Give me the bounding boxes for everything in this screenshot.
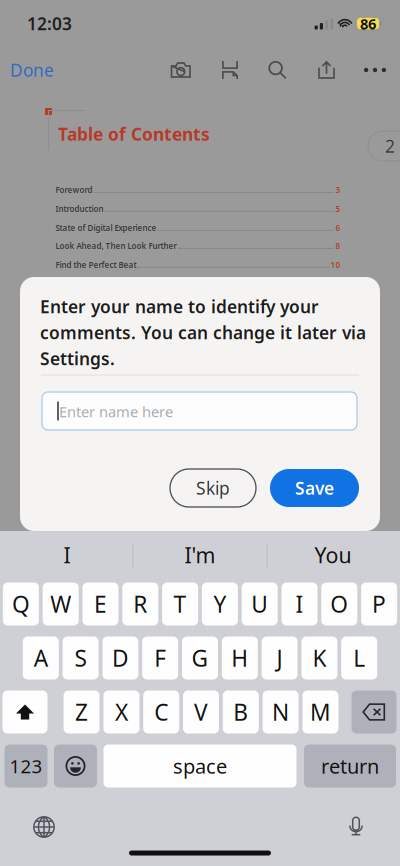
staticText: Look Ahead, Then Look Further [55,241,176,251]
button[interactable]: I'm [133,532,266,578]
button[interactable]: Camera [170,60,191,79]
button[interactable]: N [263,690,299,733]
button[interactable]: Delete [351,690,396,733]
button[interactable]: Dictation [347,815,364,836]
staticText: ........................................… [177,241,334,251]
staticText: J [277,643,283,673]
button[interactable]: I [0,532,133,578]
button[interactable]: T [162,582,198,625]
button[interactable]: F [142,636,178,679]
button[interactable]: Next keyboard [33,816,55,838]
button[interactable]: R [122,582,158,625]
staticText: N [272,697,289,727]
button[interactable]: L [341,636,377,679]
button[interactable]: I [281,582,317,625]
staticText: X [115,697,128,727]
staticText: State of Digital Experience [55,223,156,233]
staticText: 6 [335,223,340,233]
button[interactable]: D [102,636,138,679]
button[interactable]: Search [268,60,287,79]
staticText: Foreword [55,185,92,195]
staticText: A [34,643,48,673]
staticText: F [154,643,166,673]
staticText: U [251,589,268,619]
staticText: R [133,589,147,619]
button[interactable]: 123 [4,744,47,787]
button[interactable]: C [143,690,179,733]
button[interactable]: E [82,582,118,625]
staticText: 12:03 [27,12,72,35]
staticText: Enter your name to identify your comment… [40,295,366,370]
staticText: H [231,643,248,673]
button[interactable]: space [103,744,296,787]
staticText: L [353,643,365,673]
button[interactable]: U [242,582,278,625]
staticText: Table of Contents [58,122,210,145]
button[interactable]: X [103,690,139,733]
button[interactable]: Emoji [54,744,97,787]
button[interactable]: W [43,582,79,625]
staticText: V [194,697,208,727]
staticText: Done [10,58,54,81]
staticText: 86 [359,13,377,34]
staticText: Enter name here [59,402,173,421]
staticText: 86 [360,14,376,33]
button[interactable]: M [302,690,338,733]
button[interactable]: Shift [2,690,47,733]
button[interactable]: P [361,582,397,625]
button[interactable]: More [366,60,384,79]
staticText: Y [213,589,226,619]
staticText: Skip [196,476,230,499]
staticText: C [154,697,168,727]
staticText: I [295,589,303,619]
button[interactable]: Z [64,690,100,733]
button[interactable]: return [304,744,396,787]
staticText: M [310,697,331,727]
staticText: I'm [184,541,215,569]
staticText: 2 [385,134,395,157]
staticText: I [63,541,70,569]
staticText: Save [295,476,334,499]
staticText: return [321,753,379,779]
staticText: G [191,643,208,673]
staticText: space [173,753,227,779]
staticText: 10 [330,260,340,270]
button[interactable]: Save [270,469,359,507]
button[interactable]: H [222,636,258,679]
button[interactable]: Share [318,60,335,79]
staticText: K [312,643,326,673]
staticText: B [233,697,248,727]
staticText: W [50,589,71,619]
staticText: O [330,589,348,619]
button[interactable]: You [266,532,399,578]
button[interactable]: Y [202,582,238,625]
button[interactable]: Skip [170,469,256,507]
staticText: 5 [335,204,340,214]
button[interactable]: Markup [222,60,238,79]
button[interactable]: K [301,636,337,679]
staticText: 3 [335,185,340,195]
staticText: ........................................… [157,223,334,233]
button[interactable]: J [262,636,298,679]
staticText: E [94,589,107,619]
staticText: 8 [335,241,340,251]
button[interactable]: Q [3,582,39,625]
staticText: ........................................… [104,204,334,214]
button[interactable]: O [321,582,357,625]
staticText: ........................................… [93,185,334,195]
button[interactable]: Done [10,53,66,87]
button[interactable]: V [183,690,219,733]
button[interactable]: A [23,636,59,679]
staticText: You [314,541,351,569]
staticText: Find the Perfect Beat [55,260,136,270]
button[interactable]: G [182,636,218,679]
button[interactable]: S [63,636,99,679]
staticText: Z [75,697,88,727]
staticText: P [372,589,386,619]
staticText: S [75,643,87,673]
staticText: T [174,589,187,619]
staticText: 123 [9,754,42,778]
button[interactable]: B [223,690,259,733]
staticText: ........................................… [137,260,329,270]
staticText: D [112,643,129,673]
